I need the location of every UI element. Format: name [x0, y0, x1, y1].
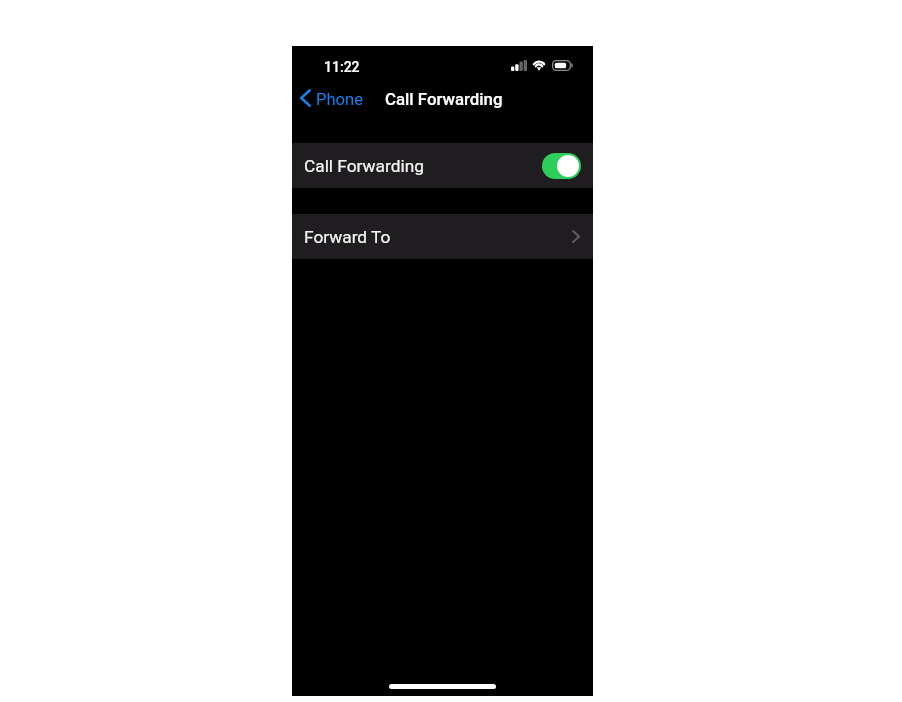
staticText: Call Forwarding	[385, 89, 503, 109]
button[interactable]: Forward To	[292, 214, 593, 259]
staticText: Phone	[316, 90, 364, 109]
staticText: Call Forwarding	[304, 156, 424, 176]
button[interactable]: Back to Phone	[292, 84, 372, 115]
staticText: Forward To	[304, 227, 391, 247]
staticText: 11:22	[324, 59, 360, 75]
button[interactable]: Call Forwarding toggle, on	[542, 153, 581, 179]
button[interactable]: Call Forwarding	[292, 143, 593, 188]
